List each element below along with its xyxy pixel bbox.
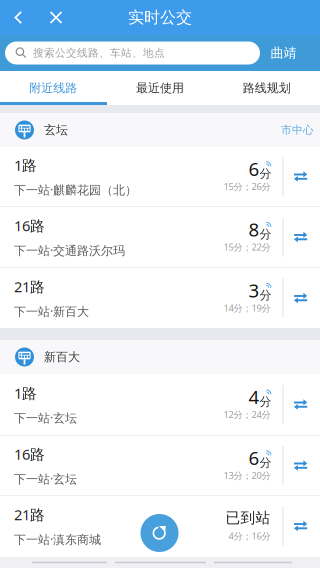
staticText: 附近线路 [29, 81, 77, 95]
button[interactable]: Back [0, 0, 37, 35]
button[interactable]: 最近使用 [107, 71, 213, 105]
staticText: 下一站·麒麟花园（北） [14, 182, 137, 198]
staticText: 15分；26分 [223, 180, 270, 193]
staticText: 最近使用 [136, 81, 184, 95]
staticText: 8 [248, 217, 259, 242]
staticText: 分 [259, 227, 271, 242]
button[interactable]: 21路 [0, 496, 320, 556]
button[interactable]: 1路 [0, 147, 320, 206]
staticText: 1路 [14, 383, 37, 403]
staticText: 4 [248, 384, 259, 409]
button[interactable]: Close [37, 0, 75, 35]
staticText: 15分；22分 [223, 241, 270, 253]
staticText: 14分；19分 [223, 302, 270, 314]
staticText: 市中心 [281, 123, 314, 136]
button[interactable]: 搜索公交线路、车站、地点 [5, 41, 260, 64]
staticText: 16路 [14, 444, 45, 464]
button[interactable]: Refresh [138, 514, 181, 552]
staticText: 分 [259, 166, 271, 181]
staticText: 21路 [14, 277, 45, 296]
button[interactable]: 附近线路 [0, 71, 107, 105]
staticText: 下一站·滇东商城 [14, 531, 101, 547]
staticText: 3 [248, 278, 259, 303]
staticText: 路线规划 [243, 81, 291, 95]
staticText: 下一站·玄坛 [14, 471, 77, 487]
button[interactable]: 21路 [0, 268, 320, 328]
staticText: 21路 [14, 505, 45, 524]
staticText: 新百大 [44, 350, 80, 364]
staticText: 分 [259, 455, 271, 470]
staticText: 玄坛 [44, 123, 68, 137]
staticText: 下一站·玄坛 [14, 410, 77, 426]
button[interactable]: 曲靖 [260, 41, 307, 64]
button[interactable]: 16路 [0, 207, 320, 267]
staticText: 分 [259, 394, 271, 409]
staticText: 分 [259, 288, 271, 303]
button[interactable]: 1路 [0, 374, 320, 435]
staticText: 搜索公交线路、车站、地点 [33, 46, 165, 59]
staticText: 已到站 [225, 509, 270, 527]
staticText: 4分；16分 [228, 530, 270, 542]
staticText: 12分；24分 [223, 408, 270, 421]
staticText: 6 [248, 445, 259, 470]
staticText: 下一站·新百大 [14, 303, 89, 319]
staticText: 6 [248, 156, 259, 181]
staticText: 曲靖 [270, 45, 296, 61]
button[interactable]: 路线规划 [213, 71, 320, 105]
staticText: 16路 [14, 216, 45, 235]
staticText: 13分；20分 [223, 469, 270, 482]
button[interactable]: 16路 [0, 436, 320, 495]
staticText: 1路 [14, 155, 37, 175]
staticText: 实时公交 [128, 8, 192, 27]
staticText: 下一站·交通路沃尔玛 [14, 242, 125, 258]
